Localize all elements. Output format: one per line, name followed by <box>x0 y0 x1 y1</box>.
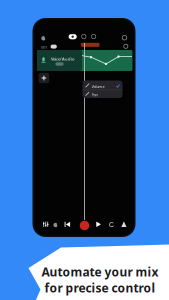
staticText: Voice/Audio <box>51 56 74 62</box>
staticText: 001 <box>41 45 47 50</box>
staticText: Pan <box>91 92 97 97</box>
staticText: Volume <box>91 84 104 89</box>
staticText: for precise control <box>44 280 155 296</box>
staticText: Automate your mix <box>41 264 158 280</box>
